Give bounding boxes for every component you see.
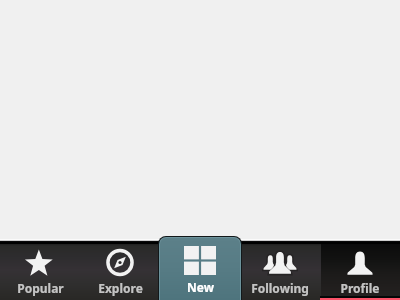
other: Profile xyxy=(343,249,377,276)
button[interactable]: Popular xyxy=(0,244,80,300)
button[interactable]: Profile xyxy=(320,244,400,300)
button[interactable]: New xyxy=(158,236,242,300)
button[interactable]: Following xyxy=(240,244,320,300)
staticText: Profile xyxy=(340,280,380,296)
other: Explore xyxy=(103,249,137,276)
other: Following xyxy=(263,249,297,276)
staticText: Popular xyxy=(17,280,64,296)
staticText: Explore xyxy=(98,280,143,296)
staticText: Following xyxy=(251,280,309,296)
staticText: New xyxy=(187,279,214,295)
other: Popular xyxy=(23,249,57,276)
button[interactable]: Explore xyxy=(80,244,160,300)
